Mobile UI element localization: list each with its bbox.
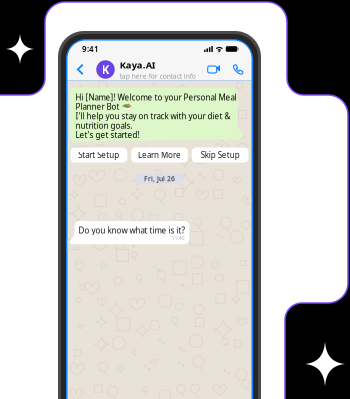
staticText: Planner Bot 🥗 [75,101,131,112]
staticText: Skip Setup [201,150,240,160]
button[interactable]: Video call [204,60,224,78]
staticText: Hi [Name]! Welcome to your Personal Meal [75,92,236,103]
staticText: K [101,61,109,78]
staticText: I'll help you stay on track with your di… [75,111,230,121]
button[interactable]: K [96,58,200,80]
button[interactable]: Start Setup [70,147,127,162]
staticText: Let's get started! [75,130,139,140]
staticText: Learn More [138,150,181,160]
button[interactable]: Learn More [131,147,188,162]
staticText: tap here for contact info [120,72,196,81]
staticText: Kaya.AI [120,58,156,71]
staticText: Do you know what time is it? [78,225,184,236]
button[interactable]: Back [71,59,89,79]
button[interactable]: Skip Setup [192,147,248,162]
staticText: Start Setup [78,150,119,160]
staticText: Fri, Jul 26 [144,174,175,183]
staticText: nutrition goals. [75,120,132,131]
button[interactable]: Voice call [229,60,247,78]
staticText: 9:41 [82,44,99,54]
staticText: 11:40 [171,234,184,241]
